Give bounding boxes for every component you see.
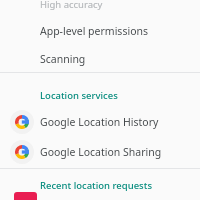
- staticText: Google Location History: [40, 115, 159, 129]
- other: Google: [10, 110, 34, 134]
- staticText: High accuracy: [40, 0, 103, 11]
- button[interactable]: Google: [0, 110, 200, 134]
- button[interactable]: Scanning: [0, 50, 200, 68]
- button[interactable]: High accuracy: [0, 0, 200, 12]
- staticText: Recent location requests: [40, 179, 152, 192]
- button[interactable]: [14, 192, 37, 200]
- button[interactable]: App-level permissions: [0, 22, 200, 40]
- staticText: Scanning: [40, 52, 86, 66]
- button[interactable]: Google: [0, 140, 200, 164]
- other: Google: [10, 140, 34, 164]
- staticText: Location services: [40, 89, 118, 102]
- staticText: Google Location Sharing: [40, 145, 162, 159]
- staticText: App-level permissions: [40, 24, 149, 38]
